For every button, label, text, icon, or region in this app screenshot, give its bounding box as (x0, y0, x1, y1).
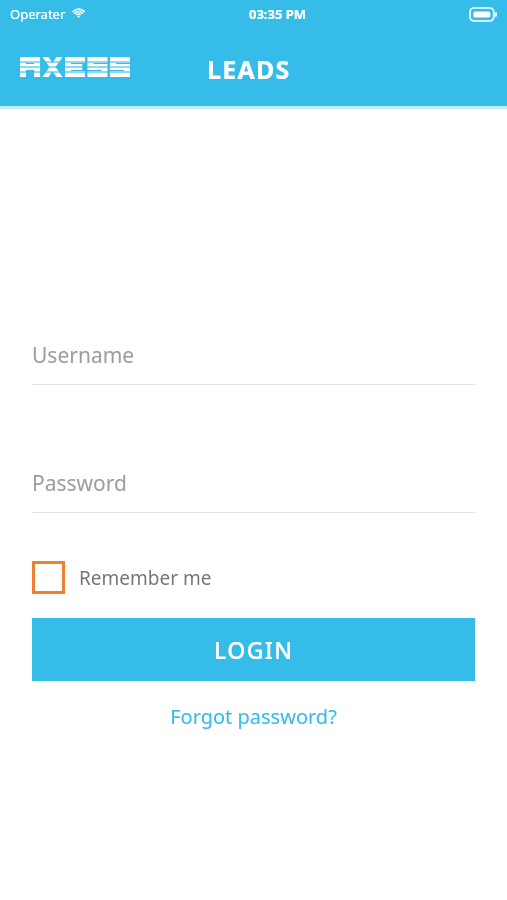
button[interactable]: Password (32, 469, 475, 513)
staticText: LEADS (207, 52, 291, 86)
staticText: Username (32, 341, 135, 370)
button[interactable]: Remember me (32, 561, 212, 594)
staticText: LOGIN (214, 634, 294, 665)
staticText: Operater (10, 5, 66, 23)
button[interactable]: LOGIN (32, 618, 475, 681)
staticText: Password (32, 469, 127, 498)
button[interactable]: Forgot password? (158, 699, 349, 734)
staticText: 03:35 PM (249, 5, 307, 23)
button[interactable]: Username (32, 341, 475, 385)
staticText: Remember me (79, 565, 212, 591)
